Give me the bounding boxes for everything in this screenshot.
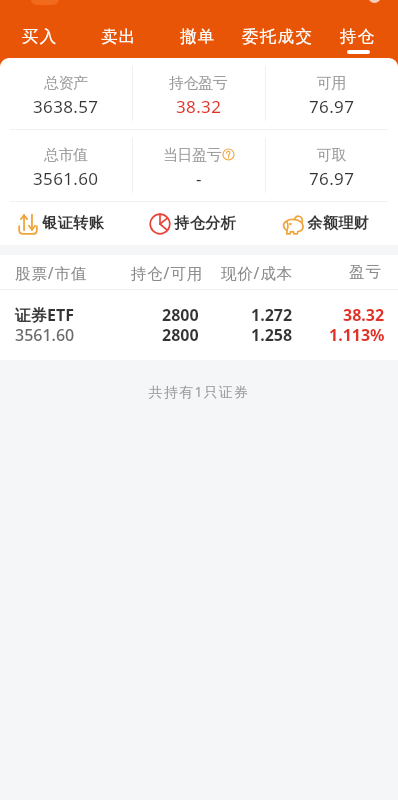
staticText: 38.32 [176, 95, 222, 118]
staticText: 1.113% [329, 324, 385, 346]
button[interactable]: 可取 [265, 130, 398, 201]
staticText: 现价/成本 [203, 262, 293, 283]
staticText: - [196, 167, 202, 190]
staticText: 1.272 [251, 304, 293, 326]
staticText: 可取 [317, 146, 347, 165]
button[interactable]: 总资产 [0, 58, 132, 129]
staticText: 2800 [162, 324, 199, 346]
staticText: 当日盈亏 [163, 146, 222, 165]
staticText: 3561.60 [33, 167, 99, 190]
button[interactable]: 当日盈亏 [132, 130, 265, 201]
staticText: 共持有1只证券 [0, 382, 398, 401]
button[interactable]: 可用 [265, 58, 398, 129]
button[interactable]: 持仓盈亏 [132, 58, 265, 129]
button[interactable]: 银证转账 [0, 202, 132, 245]
button[interactable]: 卖出 [79, 0, 158, 58]
staticText: 余额理财 [307, 214, 369, 233]
staticText: 1.258 [251, 324, 293, 346]
staticText: 股票/市值 [15, 262, 115, 283]
staticText: 38.32 [343, 304, 385, 326]
staticText: 总市值 [44, 146, 88, 165]
button[interactable]: 委托成交 [238, 0, 318, 58]
staticText: 3638.57 [33, 95, 99, 118]
other: 说明 [222, 148, 235, 161]
button[interactable]: 买入 [0, 0, 79, 58]
staticText: 持仓分析 [174, 214, 236, 233]
staticText: 撤单 [180, 26, 216, 47]
button[interactable]: 持仓分析 [132, 202, 265, 245]
staticText: 盈亏 [293, 262, 382, 282]
staticText: 可用 [317, 74, 347, 93]
staticText: 总资产 [44, 74, 88, 93]
staticText: 3561.60 [15, 324, 75, 346]
staticText: 买入 [22, 26, 58, 47]
staticText: 76.97 [309, 95, 355, 118]
staticText: 持仓 [340, 26, 376, 47]
button[interactable]: 总市值 [0, 130, 132, 201]
button[interactable]: 余额理财 [265, 202, 398, 245]
button[interactable]: 证券ETF [0, 290, 398, 360]
staticText: 2800 [162, 304, 199, 326]
staticText: 委托成交 [242, 26, 314, 47]
button[interactable]: 持仓 [318, 0, 398, 58]
button[interactable]: 撤单 [158, 0, 238, 58]
staticText: 76.97 [309, 167, 355, 190]
staticText: 证券ETF [15, 304, 74, 326]
staticText: 持仓盈亏 [169, 74, 228, 93]
staticText: 卖出 [101, 26, 137, 47]
staticText: 银证转账 [42, 214, 104, 233]
staticText: 持仓/可用 [115, 262, 203, 283]
